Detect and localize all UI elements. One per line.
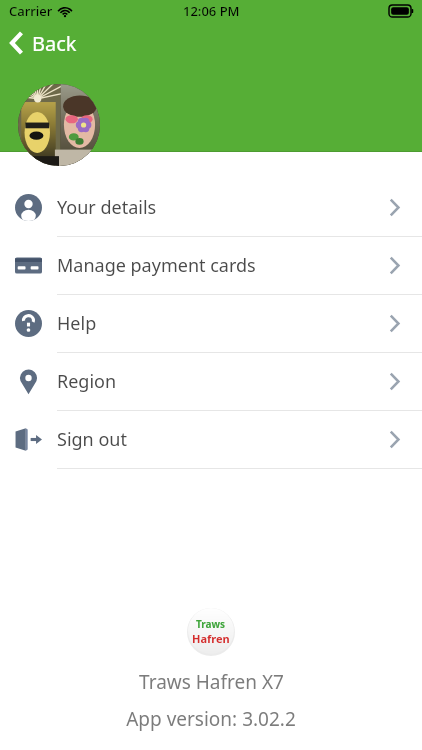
- staticText: 12:06 PM: [183, 2, 240, 20]
- staticText: Back: [32, 30, 77, 57]
- button[interactable]: Manage payment cards: [0, 237, 422, 294]
- button[interactable]: Profile photo: [18, 84, 100, 166]
- staticText: Sign out: [57, 427, 127, 452]
- button[interactable]: Sign out: [0, 411, 422, 468]
- button[interactable]: Region: [0, 353, 422, 410]
- staticText: Carrier: [9, 2, 53, 20]
- staticText: App version: 3.02.2: [126, 706, 296, 732]
- staticText: Traws: [196, 617, 226, 631]
- button[interactable]: Back: [10, 22, 77, 64]
- staticText: Your details: [57, 195, 157, 220]
- staticText: Region: [57, 369, 117, 394]
- staticText: Manage payment cards: [57, 253, 256, 278]
- staticText: Traws Hafren X7: [139, 669, 284, 695]
- button[interactable]: Help: [0, 295, 422, 352]
- staticText: Help: [57, 311, 97, 336]
- staticText: Hafren: [192, 631, 230, 646]
- button[interactable]: Your details: [0, 179, 422, 236]
